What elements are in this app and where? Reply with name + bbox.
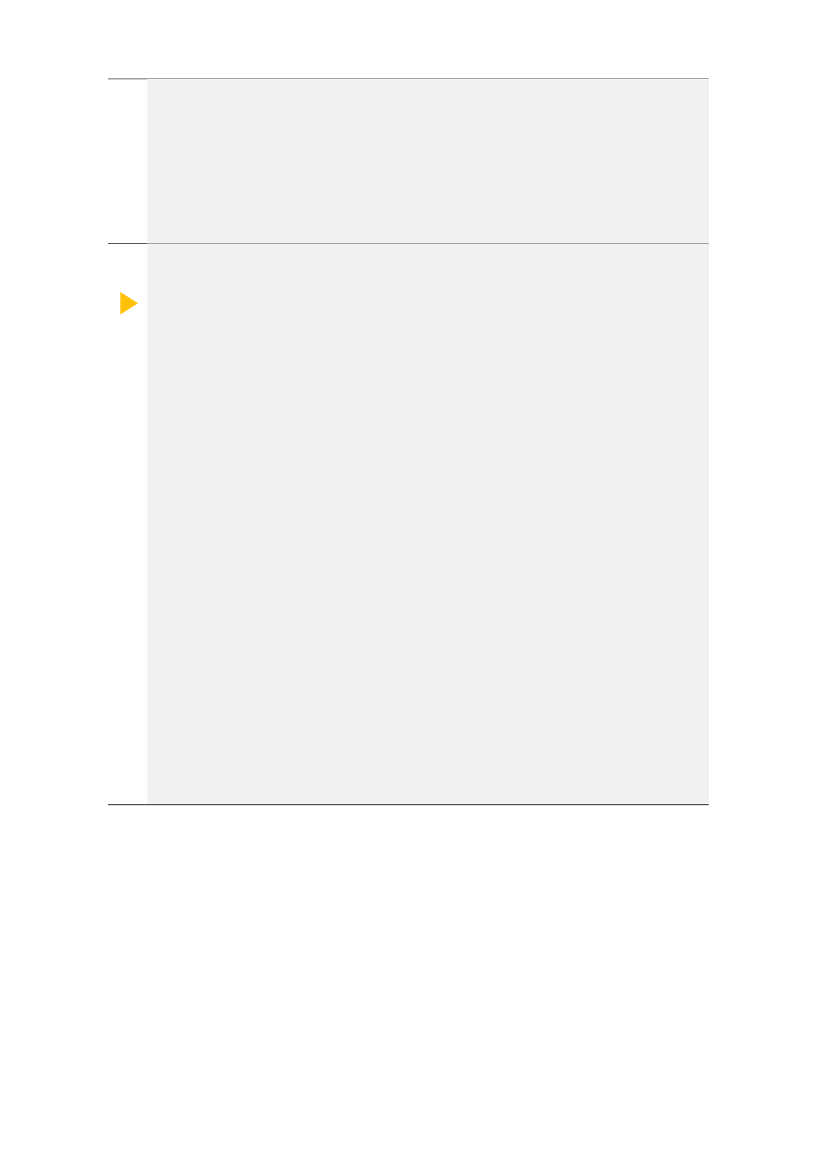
button[interactable]: Play	[120, 292, 138, 315]
button[interactable]: Media placeholder	[147, 79, 709, 804]
